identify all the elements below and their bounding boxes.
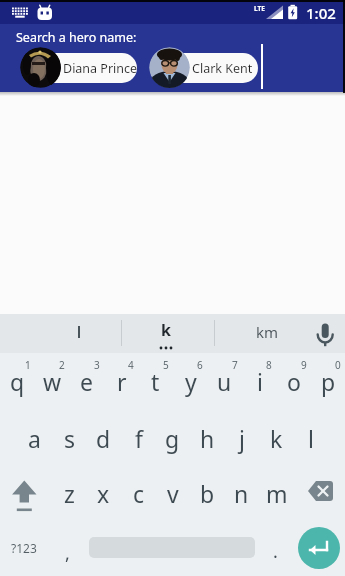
staticText: e [80,366,93,397]
staticText: 1:02 [306,3,336,21]
button[interactable]: h [190,416,225,460]
staticText: q [10,366,25,397]
button[interactable]: Diana Prince [20,47,137,88]
button[interactable]: o [276,360,311,402]
staticText: u [217,366,232,397]
staticText: Search a hero name: [16,29,137,46]
staticText: Clark Kent [192,60,253,77]
button[interactable]: r [104,360,139,402]
staticText: 3 [94,358,100,372]
staticText: n [234,478,249,509]
staticText: h [200,423,215,454]
staticText: r [117,366,127,397]
button[interactable]: b [190,471,225,515]
staticText: km [256,322,279,342]
staticText: k [270,423,283,454]
button[interactable] [0,470,51,514]
staticText: f [135,423,143,454]
button[interactable]: j [224,416,259,460]
staticText: g [165,423,180,454]
button[interactable]: , [50,532,84,574]
staticText: 7 [232,358,238,372]
button[interactable]: y [173,360,208,402]
staticText: 0 [335,358,341,372]
staticText: c [133,478,145,509]
button[interactable]: w [35,360,70,402]
button[interactable] [293,470,345,514]
button[interactable]: d [86,416,121,460]
button[interactable]: g [155,416,190,460]
button[interactable]: f [121,416,156,460]
button[interactable]: km [244,316,290,348]
button[interactable]: . [258,530,292,572]
button[interactable] [308,318,340,350]
staticText: ?123 [11,540,37,556]
button[interactable]: k [259,416,294,460]
staticText: v [167,478,179,509]
staticText: , [65,541,70,566]
button[interactable]: c [121,471,156,515]
button[interactable]: m [259,471,294,515]
staticText: i [257,366,263,397]
staticText: t [151,366,160,397]
button[interactable]: l [293,416,328,460]
staticText: Diana Prince [63,60,137,77]
staticText: . [273,539,278,564]
staticText: l [308,423,314,454]
button[interactable]: p [311,360,345,402]
button[interactable]: n [224,471,259,515]
staticText: d [96,423,111,454]
staticText: 4 [128,358,134,372]
staticText: x [97,478,110,509]
staticText: z [64,478,75,509]
button[interactable]: k [146,314,186,346]
button[interactable]: e [69,360,104,402]
staticText: a [28,423,41,454]
button[interactable]: z [52,471,87,515]
button[interactable] [56,316,102,348]
staticText: 1 [25,358,31,372]
button[interactable]: v [155,471,190,515]
staticText: 2 [59,358,65,372]
staticText: s [64,423,76,454]
button[interactable]: q [0,360,35,402]
staticText: LTE [254,4,265,13]
button[interactable]: s [52,416,87,460]
staticText: k [161,319,171,341]
button[interactable]: x [86,471,121,515]
staticText: 5 [163,358,169,372]
staticText: 8 [266,358,272,372]
staticText: 6 [197,358,203,372]
staticText: m [266,478,288,509]
staticText: j [239,423,245,454]
button[interactable]: a [17,416,52,460]
button[interactable]: u [207,360,242,402]
staticText: o [287,366,301,397]
button[interactable]: t [138,360,173,402]
staticText: w [43,366,62,397]
button[interactable]: ?123 [2,527,46,569]
button[interactable] [298,527,340,569]
button[interactable]: i [242,360,277,402]
staticText: y [185,366,197,397]
staticText: b [200,478,215,509]
staticText: 9 [301,358,307,372]
staticText: p [321,366,336,397]
button[interactable]: Clark Kent [149,47,258,88]
